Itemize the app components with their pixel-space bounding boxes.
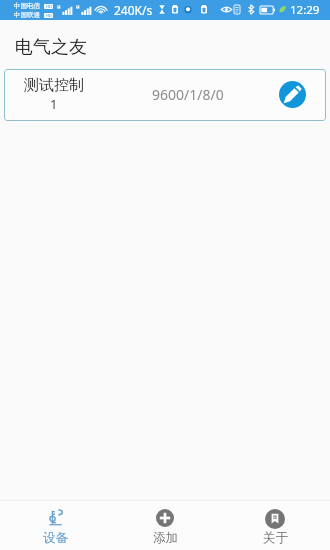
button[interactable]: 测试控制 [4, 69, 326, 121]
button[interactable]: 设备 [0, 501, 110, 550]
staticText: 添加 [153, 530, 178, 546]
staticText: 设备 [43, 530, 68, 546]
button[interactable]: 添加 [110, 501, 220, 550]
staticText: 关于 [263, 530, 288, 546]
staticText: 中国电信 [14, 2, 40, 10]
staticText: 12:29 [290, 2, 320, 18]
staticText: 电气之友 [15, 36, 87, 59]
staticText: 测试控制 [24, 76, 84, 95]
staticText: 9600/1/8/0 [152, 85, 224, 104]
staticText: HD [46, 13, 52, 18]
staticText: 中国联通 [14, 11, 40, 19]
button[interactable]: 关于 [220, 501, 330, 550]
staticText: 1 [50, 95, 58, 113]
staticText: 240K/s [114, 2, 153, 18]
button[interactable]: Edit [279, 81, 306, 108]
staticText: HD [46, 4, 52, 9]
